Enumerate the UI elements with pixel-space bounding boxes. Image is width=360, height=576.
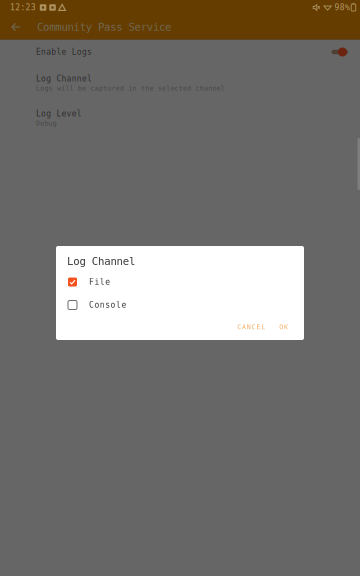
staticText: 98% bbox=[335, 3, 350, 12]
staticText: OK bbox=[279, 323, 288, 331]
button[interactable]: CANCEL bbox=[230, 318, 272, 336]
button[interactable]: Enable Logs bbox=[0, 40, 360, 64]
staticText: Logs will be captured in the selected ch… bbox=[36, 84, 225, 92]
button[interactable]: Log Channel bbox=[0, 70, 360, 96]
staticText: Log Channel bbox=[36, 74, 92, 83]
button[interactable]: Console bbox=[56, 295, 304, 315]
staticText: Log Channel bbox=[67, 255, 135, 267]
staticText: Log Level bbox=[36, 109, 82, 118]
staticText: File bbox=[89, 277, 110, 287]
staticText: Debug bbox=[36, 119, 57, 127]
staticText: CANCEL bbox=[237, 323, 265, 331]
button[interactable]: Navigate up bbox=[5, 15, 27, 39]
button[interactable]: File bbox=[56, 272, 304, 292]
button[interactable]: OK bbox=[272, 318, 295, 336]
staticText: Community Pass Service bbox=[37, 21, 171, 33]
staticText: Enable Logs bbox=[36, 47, 92, 57]
staticText: 12:23 bbox=[10, 3, 36, 12]
button[interactable]: Log Level bbox=[0, 105, 360, 131]
staticText: Console bbox=[89, 300, 126, 310]
